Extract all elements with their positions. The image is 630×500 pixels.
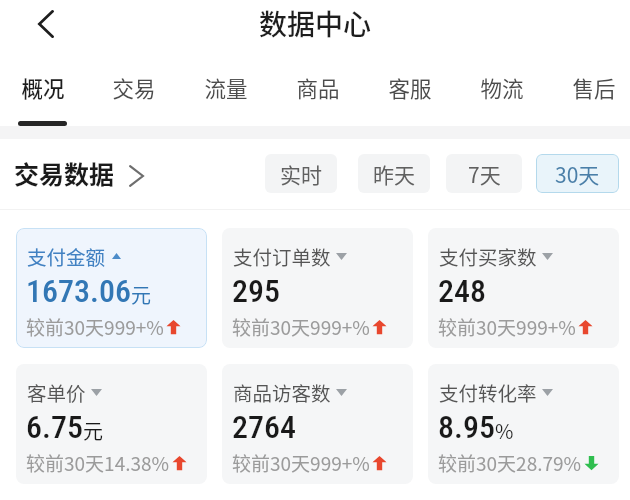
button[interactable]: 客单价 bbox=[16, 364, 207, 484]
button[interactable]: 商品访客数 bbox=[222, 364, 413, 484]
button[interactable]: 物流 bbox=[459, 58, 545, 126]
staticText: 物流 bbox=[459, 72, 545, 103]
staticText: 支付订单数 bbox=[233, 242, 331, 270]
staticText: 较前30天999+% bbox=[26, 313, 164, 341]
button[interactable]: 流量 bbox=[183, 58, 269, 126]
button[interactable]: 支付金额 bbox=[16, 228, 207, 348]
staticText: 1673.06 bbox=[26, 272, 131, 310]
button[interactable]: 实时 bbox=[265, 154, 337, 193]
staticText: 较前30天999+% bbox=[232, 313, 370, 341]
staticText: 概况 bbox=[0, 72, 86, 103]
button[interactable]: 7天 bbox=[446, 154, 522, 193]
staticText: 支付买家数 bbox=[439, 242, 537, 270]
staticText: 交易数据 bbox=[14, 155, 115, 191]
button[interactable]: 概况 bbox=[0, 58, 86, 126]
staticText: 元 bbox=[131, 280, 151, 309]
staticText: 8.95 bbox=[438, 408, 495, 446]
button[interactable]: 昨天 bbox=[358, 154, 430, 193]
staticText: 昨天 bbox=[373, 159, 415, 189]
staticText: 客单价 bbox=[27, 378, 86, 406]
staticText: 元 bbox=[83, 416, 103, 445]
staticText: % bbox=[495, 416, 514, 445]
staticText: 295 bbox=[232, 272, 280, 310]
staticText: 2764 bbox=[232, 408, 296, 446]
staticText: 较前30天14.38% bbox=[26, 449, 170, 477]
staticText: 商品 bbox=[275, 72, 361, 103]
button[interactable]: 支付订单数 bbox=[222, 228, 413, 348]
staticText: 售后 bbox=[551, 72, 630, 103]
staticText: 数据中心 bbox=[259, 3, 372, 44]
staticText: 较前30天28.79% bbox=[438, 449, 582, 477]
staticText: 交易 bbox=[91, 72, 177, 103]
button[interactable]: 支付转化率 bbox=[428, 364, 619, 484]
button[interactable]: 支付买家数 bbox=[428, 228, 619, 348]
staticText: 客服 bbox=[367, 72, 453, 103]
button[interactable]: 30天 bbox=[536, 154, 619, 193]
staticText: 较前30天999+% bbox=[232, 449, 370, 477]
button[interactable]: 售后 bbox=[551, 58, 630, 126]
button[interactable]: 商品 bbox=[275, 58, 361, 126]
staticText: 30天 bbox=[555, 159, 600, 189]
staticText: 商品访客数 bbox=[233, 378, 331, 406]
staticText: 实时 bbox=[280, 159, 322, 189]
button[interactable]: 交易数据 bbox=[14, 155, 144, 191]
button[interactable]: 交易 bbox=[91, 58, 177, 126]
staticText: 支付转化率 bbox=[439, 378, 537, 406]
button[interactable]: Back bbox=[21, 0, 70, 48]
staticText: 7天 bbox=[468, 159, 501, 189]
button[interactable]: 客服 bbox=[367, 58, 453, 126]
staticText: 6.75 bbox=[26, 408, 83, 446]
staticText: 248 bbox=[438, 272, 486, 310]
staticText: 较前30天999+% bbox=[438, 313, 576, 341]
staticText: 流量 bbox=[183, 72, 269, 103]
staticText: 支付金额 bbox=[27, 242, 106, 270]
